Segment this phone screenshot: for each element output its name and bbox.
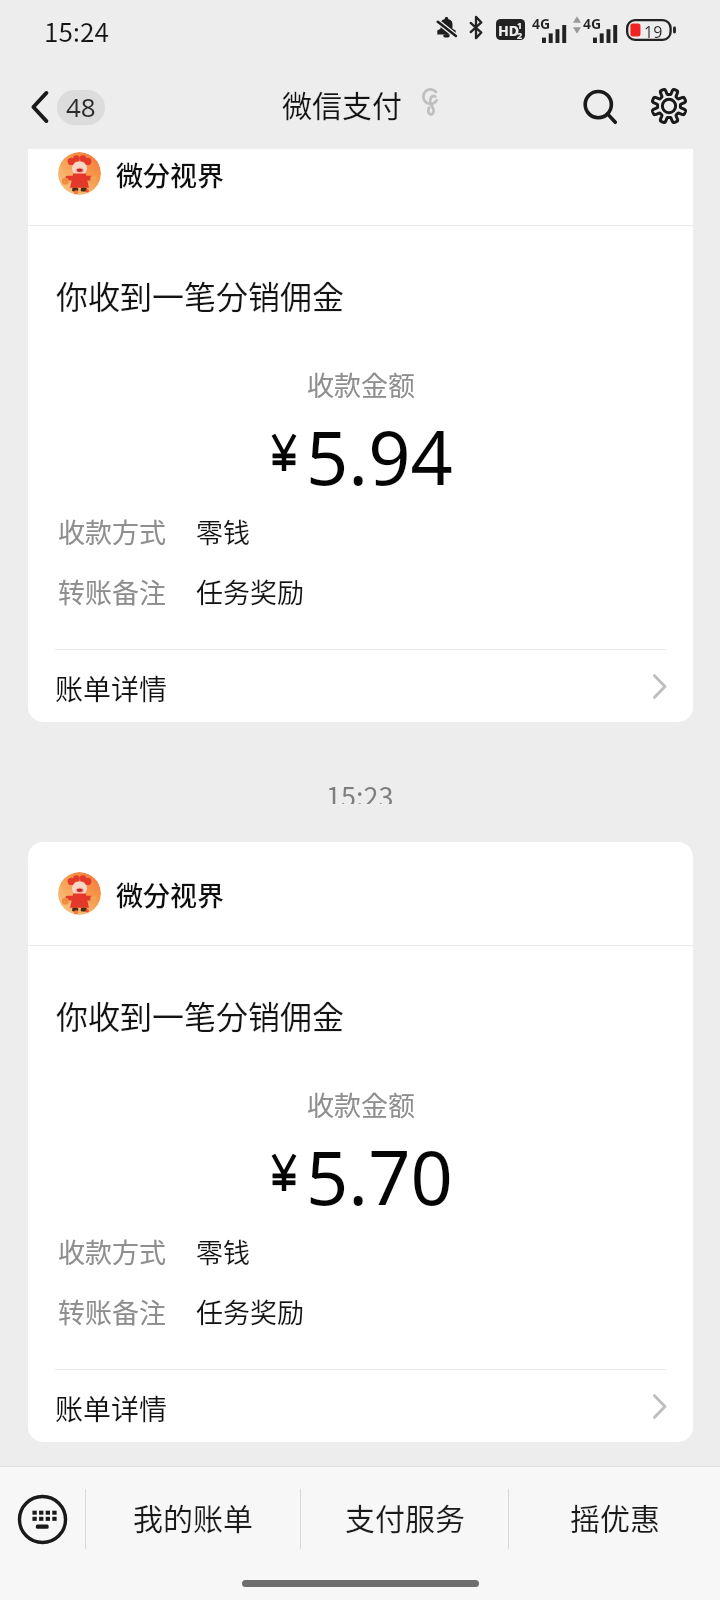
staticText: 19 [644, 21, 663, 43]
staticText: HD [498, 21, 519, 40]
staticText: 15:24 [44, 12, 109, 50]
staticText: 任务奖励 [196, 572, 304, 611]
staticText: 收款方式 [58, 512, 166, 551]
staticText: 微信支付 [282, 82, 402, 122]
staticText: 零钱 [196, 512, 250, 551]
staticText: 微分视界 [116, 875, 224, 914]
staticText: 转账备注 [58, 572, 166, 611]
staticText: 48 [66, 90, 96, 124]
button[interactable]: 支付服务 [301, 1467, 508, 1572]
button[interactable]: 账单详情 [28, 1370, 693, 1442]
staticText: 收款金额 [307, 365, 415, 404]
staticText: 4G [532, 14, 551, 33]
button[interactable]: Back, 48 unread [25, 80, 115, 134]
staticText: 5.94 [306, 406, 453, 507]
staticText: 15:23 [326, 776, 394, 804]
staticText: 零钱 [196, 1232, 250, 1271]
staticText: 任务奖励 [196, 1292, 304, 1331]
staticText: 5.70 [306, 1126, 453, 1227]
staticText: 我的账单 [133, 1495, 253, 1538]
button[interactable]: 账单详情 [28, 650, 693, 722]
staticText: 你收到一笔分销佣金 [56, 272, 345, 318]
button[interactable]: 摇优惠 [509, 1467, 720, 1572]
button[interactable]: 我的账单 [86, 1467, 300, 1572]
staticText: 收款方式 [58, 1232, 166, 1271]
button[interactable]: Settings [641, 78, 697, 134]
staticText: 账单详情 [55, 1388, 168, 1429]
staticText: 2 [517, 29, 523, 41]
staticText: 转账备注 [58, 1292, 166, 1331]
staticText: 账单详情 [55, 668, 168, 709]
button[interactable]: Keyboard [0, 1467, 85, 1572]
button[interactable]: 微分视界 [28, 842, 693, 1442]
staticText: 摇优惠 [570, 1495, 660, 1538]
staticText: 微分视界 [116, 155, 224, 194]
staticText: 4G [583, 14, 602, 33]
staticText: 支付服务 [345, 1495, 465, 1538]
staticText: 你收到一笔分销佣金 [56, 992, 345, 1038]
staticText: 1 [517, 19, 523, 31]
button[interactable]: Search [573, 80, 629, 136]
staticText: 收款金额 [307, 1085, 415, 1124]
button[interactable]: 微分视界 [28, 149, 693, 722]
